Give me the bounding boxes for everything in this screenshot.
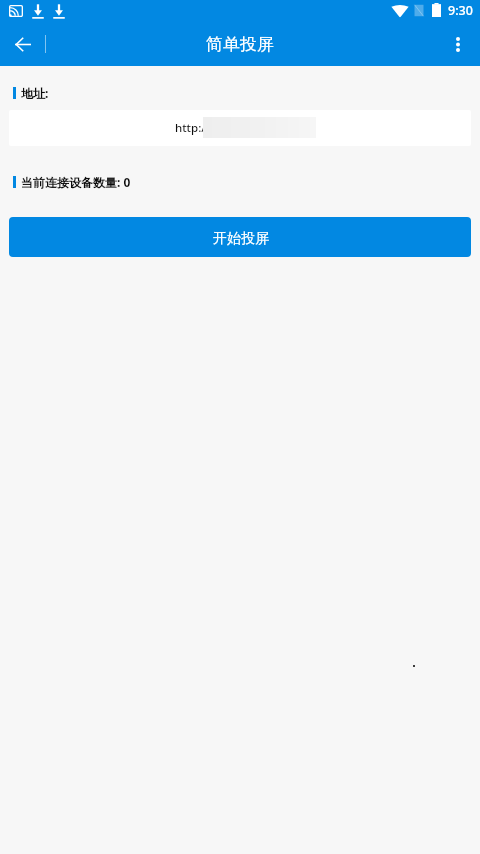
button[interactable]: More options bbox=[436, 22, 480, 66]
staticText: 当前连接设备数量: 0 bbox=[21, 174, 131, 190]
staticText: 简单投屏 bbox=[0, 34, 480, 55]
button[interactable]: 开始投屏 bbox=[9, 217, 471, 257]
button[interactable]: http:/ bbox=[9, 110, 471, 146]
staticText: http:/ bbox=[175, 120, 206, 136]
button[interactable]: Back bbox=[0, 22, 45, 66]
staticText: 开始投屏 bbox=[213, 230, 269, 248]
staticText: 9:30 bbox=[448, 2, 473, 19]
staticText: 地址: bbox=[21, 85, 49, 101]
